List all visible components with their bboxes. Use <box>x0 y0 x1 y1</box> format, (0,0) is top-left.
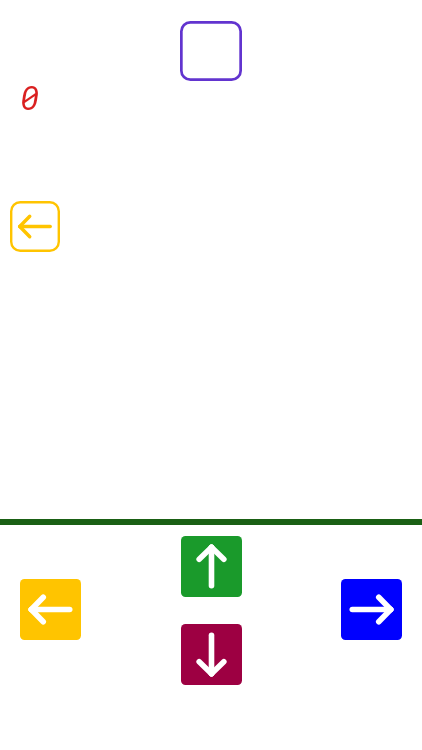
button[interactable]: Left <box>20 579 81 640</box>
button[interactable]: Move left command <box>10 201 60 252</box>
staticText: 0 <box>20 75 40 119</box>
button[interactable]: Goal cell <box>180 21 242 81</box>
button[interactable]: Down <box>181 624 242 685</box>
button[interactable]: Right <box>341 579 402 640</box>
button[interactable]: Up <box>181 536 242 597</box>
